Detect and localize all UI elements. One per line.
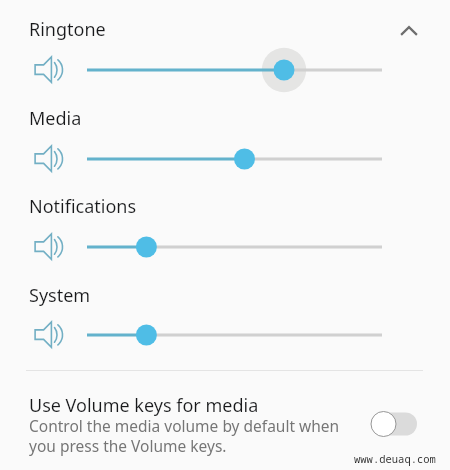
button[interactable]: Use Volume keys for media: [366, 404, 422, 444]
button[interactable]: Use Volume keys for media: [0, 386, 450, 454]
other: Mute System volume: [33, 318, 63, 348]
button[interactable]: Ringtone volume: [62, 45, 407, 95]
staticText: Media: [29, 106, 82, 131]
button[interactable]: Media volume: [62, 134, 407, 184]
staticText: Use Volume keys for media: [29, 393, 259, 418]
staticText: Control the media volume by default when…: [29, 415, 349, 456]
other: Mute Media volume: [33, 142, 63, 172]
staticText: System: [29, 283, 91, 308]
other: Mute Ringtone volume: [33, 53, 63, 83]
button[interactable]: Notification volume: [62, 222, 407, 272]
staticText: Ringtone: [29, 17, 106, 42]
button[interactable]: Collapse Ringtone: [390, 12, 428, 50]
staticText: www.deuaq.com: [354, 452, 436, 466]
other: Mute Notification volume: [33, 230, 63, 260]
staticText: Notifications: [29, 194, 137, 219]
button[interactable]: System volume: [62, 310, 407, 360]
